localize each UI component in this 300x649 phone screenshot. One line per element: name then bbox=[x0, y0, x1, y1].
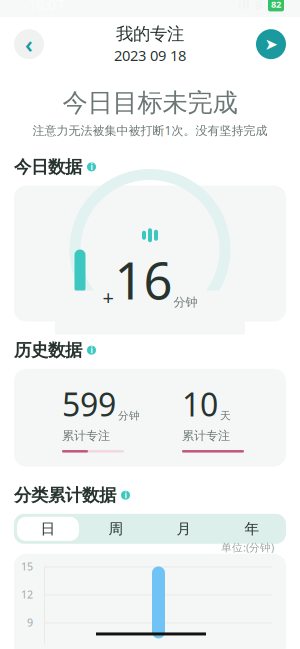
staticText: 分钟 bbox=[118, 409, 140, 422]
staticText: 2023 09 18 bbox=[114, 46, 186, 65]
staticText: 82 bbox=[271, 0, 281, 10]
staticText: 单位:(分钟) bbox=[221, 540, 274, 554]
staticText: 年 bbox=[244, 520, 259, 538]
staticText: 累计专注 bbox=[62, 428, 110, 443]
staticText: 599 bbox=[62, 383, 116, 425]
staticText: 9 bbox=[27, 615, 33, 630]
staticText: 注意力无法被集中被打断1次。没有坚持完成 bbox=[32, 122, 267, 138]
staticText: ➤ bbox=[264, 35, 277, 53]
button[interactable]: 月 bbox=[150, 514, 218, 544]
staticText: 今日数据 bbox=[14, 156, 82, 177]
staticText: 日 bbox=[40, 520, 55, 538]
staticText: 月 bbox=[176, 520, 191, 538]
staticText: 分类累计数据 bbox=[14, 484, 116, 506]
button[interactable]: Back bbox=[14, 29, 44, 59]
button[interactable]: 周 bbox=[82, 514, 150, 544]
staticText: + bbox=[102, 284, 113, 311]
staticText: 10 bbox=[182, 383, 218, 425]
staticText: i bbox=[90, 345, 92, 355]
staticText: 分钟 bbox=[173, 295, 197, 309]
button[interactable]: 日 bbox=[14, 514, 82, 544]
staticText: 周 bbox=[108, 520, 123, 538]
button[interactable]: Share bbox=[256, 29, 286, 59]
staticText: 今日目标未完成 bbox=[62, 87, 237, 118]
staticText: i bbox=[124, 490, 126, 500]
staticText: 12 bbox=[21, 587, 33, 602]
staticText: 16 bbox=[114, 246, 172, 313]
staticText: 天 bbox=[220, 409, 231, 422]
button[interactable]: 年 bbox=[218, 514, 286, 544]
staticText: 累计专注 bbox=[182, 428, 230, 443]
staticText: ‹ bbox=[25, 29, 33, 59]
staticText: i bbox=[90, 162, 92, 172]
staticText: 我的专注 bbox=[116, 23, 184, 45]
staticText: 15 bbox=[21, 559, 33, 574]
staticText: 历史数据 bbox=[14, 339, 82, 361]
